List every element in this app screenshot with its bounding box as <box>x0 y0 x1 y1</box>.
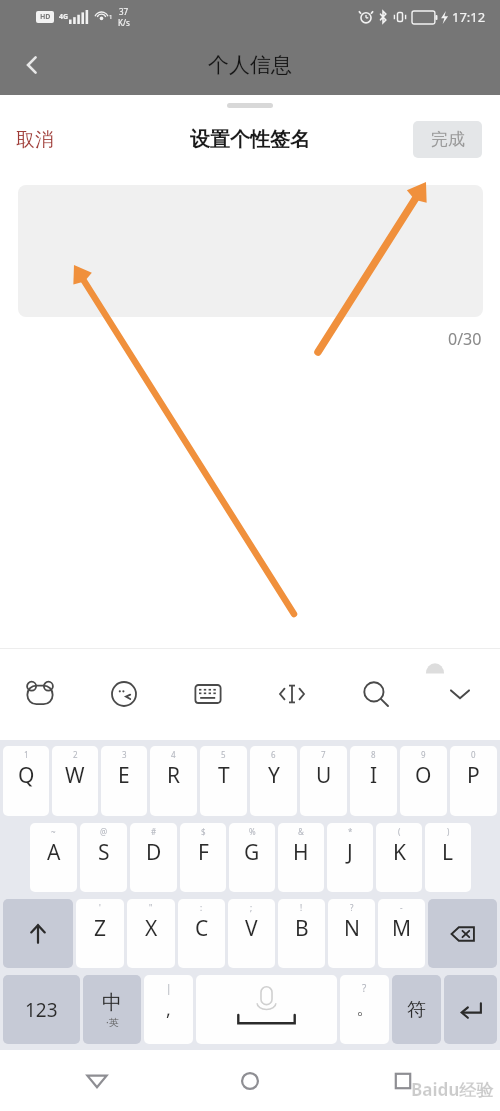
staticText: @ <box>100 826 108 837</box>
button[interactable]: 3 <box>101 746 147 816</box>
staticText: 符 <box>407 998 426 1022</box>
button[interactable]: 4 <box>150 746 197 816</box>
button[interactable]: ~ <box>30 823 77 892</box>
staticText: J <box>347 838 353 867</box>
button[interactable]: 0 <box>450 746 497 816</box>
staticText: ·英 <box>106 1015 119 1029</box>
staticText: * <box>348 826 353 837</box>
button[interactable]: Search <box>350 668 402 720</box>
button[interactable]: 9 <box>400 746 447 816</box>
button[interactable]: Backspace <box>428 899 497 968</box>
button[interactable]: Shift <box>3 899 73 968</box>
button[interactable]: Baidu input <box>14 668 66 720</box>
staticText: B <box>295 914 309 943</box>
staticText: 。 <box>356 997 374 1020</box>
staticText: Y <box>268 761 280 790</box>
button[interactable]: Enter <box>444 975 497 1044</box>
button[interactable]: " <box>127 899 175 968</box>
button[interactable]: ) <box>425 823 471 892</box>
button[interactable]: Keyboard layout <box>182 668 234 720</box>
button[interactable]: @ <box>80 823 127 892</box>
button[interactable]: ; <box>228 899 275 968</box>
staticText: 2 <box>73 749 78 760</box>
button[interactable]: * <box>327 823 373 892</box>
staticText: ! <box>300 902 303 913</box>
button[interactable]: ' <box>76 899 124 968</box>
button[interactable]: 中 <box>83 975 141 1044</box>
staticText: N <box>344 914 360 943</box>
staticText: I <box>370 761 378 790</box>
button[interactable]: 取消 <box>8 122 62 158</box>
button[interactable]: ( <box>376 823 422 892</box>
button[interactable]: Home <box>223 1054 277 1108</box>
staticText: 17:12 <box>452 8 486 26</box>
staticText: V <box>245 914 258 943</box>
staticText: U <box>316 761 332 790</box>
button[interactable]: 完成 <box>413 121 482 158</box>
staticText: & <box>298 826 304 837</box>
staticText: $ <box>201 826 206 837</box>
button[interactable]: ! <box>278 899 325 968</box>
button[interactable]: # <box>130 823 177 892</box>
staticText: " <box>149 902 153 913</box>
button[interactable]: Emoji <box>98 668 150 720</box>
staticText: E <box>118 761 130 790</box>
staticText: , <box>166 997 171 1022</box>
staticText: 123 <box>25 997 58 1023</box>
staticText: O <box>415 761 432 790</box>
button[interactable]: 符 <box>392 975 441 1044</box>
staticText: 6 <box>271 749 276 760</box>
staticText: 8 <box>371 749 376 760</box>
button[interactable]: $ <box>180 823 226 892</box>
staticText: - <box>400 902 403 913</box>
staticText: G <box>244 838 260 867</box>
staticText: ' <box>99 902 101 913</box>
button[interactable]: 5 <box>200 746 247 816</box>
staticText: HD <box>40 12 51 22</box>
button[interactable]: 7 <box>300 746 347 816</box>
button[interactable] <box>18 185 483 317</box>
staticText: 7 <box>321 749 326 760</box>
staticText: 0/30 <box>448 328 482 350</box>
button[interactable]: Back <box>70 1054 124 1108</box>
staticText: L <box>442 838 454 867</box>
staticText: ) <box>447 826 450 837</box>
staticText: : <box>200 902 203 913</box>
staticText: ( <box>398 826 401 837</box>
staticText: Baidu经验 <box>411 1078 494 1101</box>
staticText: 5 <box>221 749 226 760</box>
staticText: P <box>467 761 480 790</box>
button[interactable]: : <box>178 899 225 968</box>
button[interactable]: 1 <box>3 746 49 816</box>
staticText: F <box>198 838 209 867</box>
button[interactable]: - <box>378 899 425 968</box>
button[interactable]: 8 <box>350 746 397 816</box>
staticText: W <box>65 761 85 790</box>
button[interactable]: Hide keyboard <box>434 668 486 720</box>
button[interactable]: 6 <box>250 746 297 816</box>
staticText: | <box>166 981 172 995</box>
staticText: 3 <box>122 749 127 760</box>
button[interactable]: ? <box>340 975 389 1044</box>
staticText: # <box>151 826 157 837</box>
button[interactable]: | <box>144 975 193 1044</box>
button[interactable]: & <box>278 823 324 892</box>
button[interactable]: Back <box>10 43 54 87</box>
staticText: A <box>47 838 61 867</box>
staticText: 完成 <box>431 129 465 150</box>
staticText: 0 <box>471 749 476 760</box>
staticText: 9 <box>421 749 426 760</box>
button[interactable]: ? <box>328 899 375 968</box>
button[interactable]: Move cursor <box>266 668 318 720</box>
staticText: 4G <box>59 12 69 22</box>
button[interactable]: Space <box>196 975 337 1044</box>
button[interactable]: 2 <box>52 746 98 816</box>
staticText: % <box>249 826 256 837</box>
staticText: ? <box>350 902 354 913</box>
button[interactable]: 123 <box>3 975 80 1044</box>
button[interactable]: Recents <box>376 1054 430 1108</box>
staticText: S <box>98 838 110 867</box>
staticText: 4 <box>171 749 176 760</box>
staticText: M <box>392 914 412 943</box>
button[interactable]: % <box>229 823 275 892</box>
